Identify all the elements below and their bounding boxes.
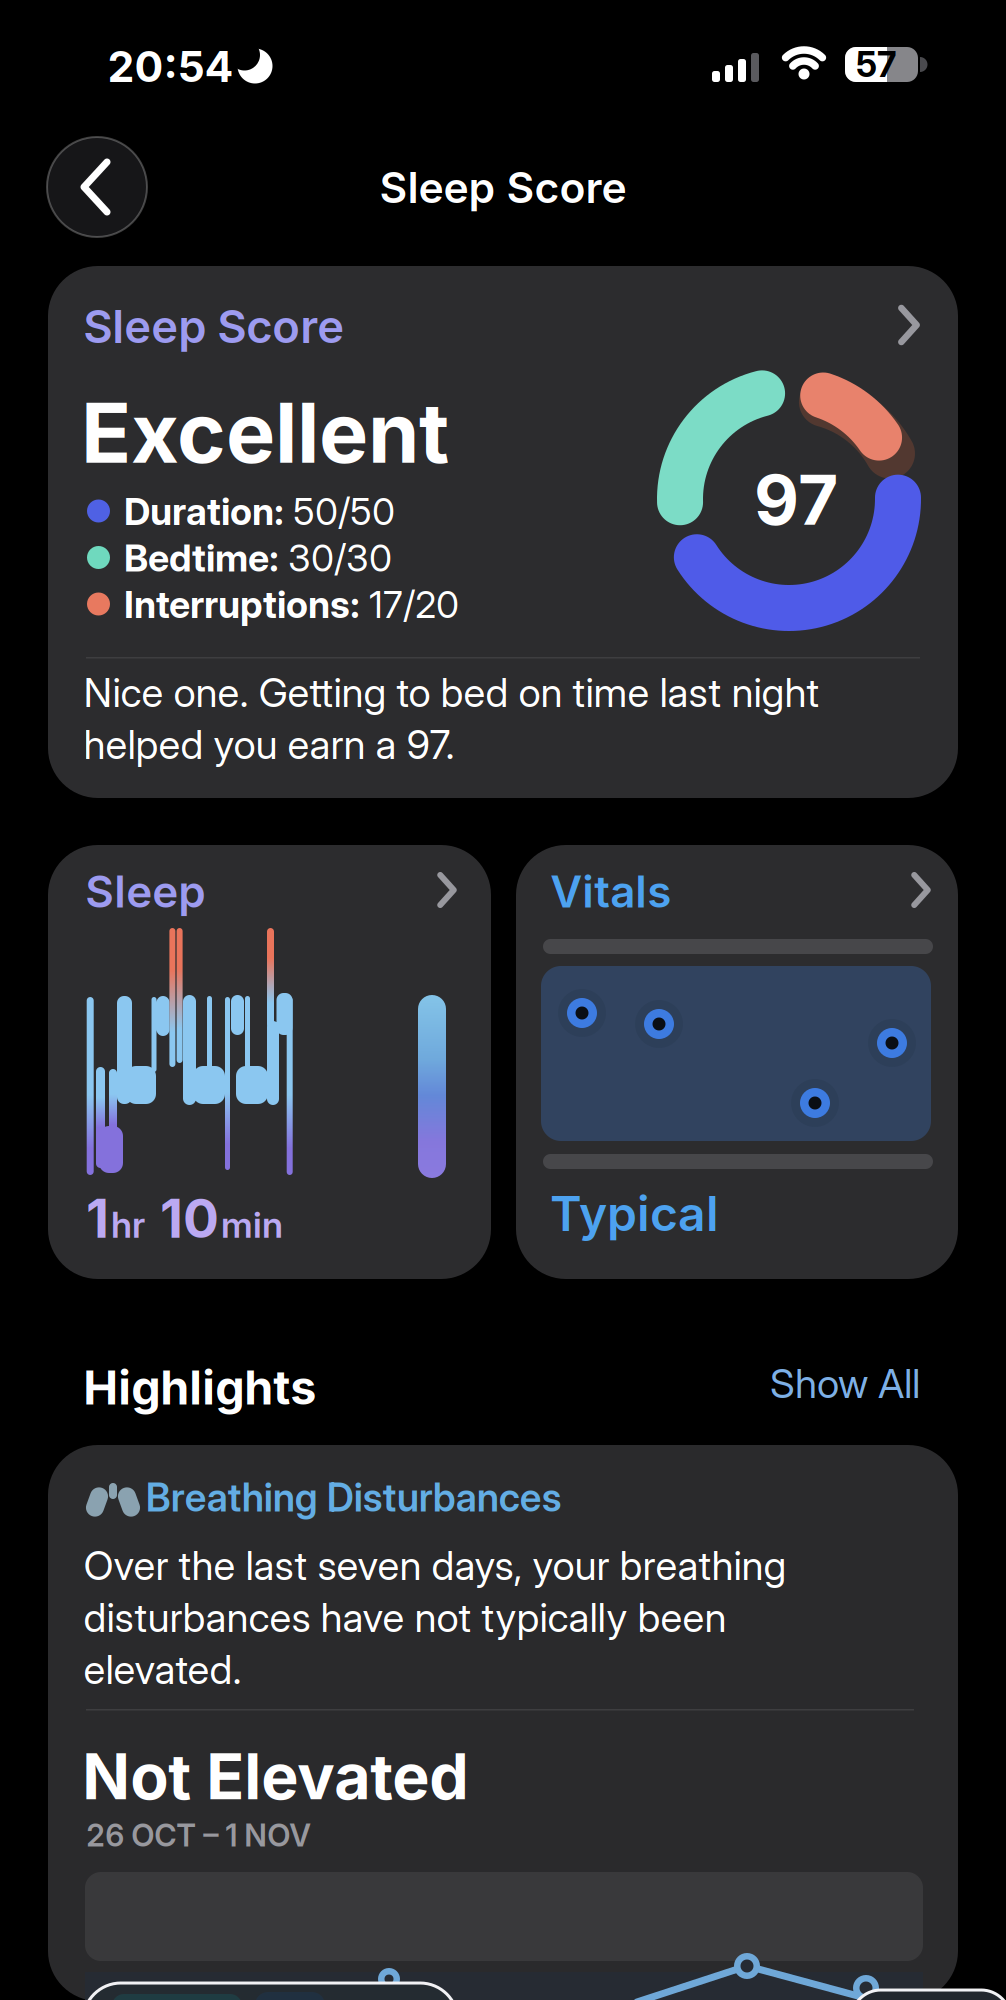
staticText: Over the last seven days, your breathing	[84, 1541, 787, 1590]
staticText: Sleep Score	[379, 162, 626, 213]
staticText: Sleep Score	[83, 299, 344, 354]
staticText: hr	[111, 1203, 145, 1246]
staticText: Vitals	[550, 865, 671, 918]
staticText: Highlights	[83, 1359, 316, 1416]
button[interactable]: Back	[47, 137, 147, 237]
staticText: 10	[147, 1186, 219, 1250]
staticText: 1	[86, 1186, 109, 1250]
button[interactable]: Vitals	[516, 845, 958, 1279]
staticText: 26 OCT – 1 NOV	[86, 1817, 311, 1854]
staticText: helped you earn a 97.	[84, 720, 455, 768]
staticText: Duration:	[124, 489, 284, 534]
staticText: Excellent	[81, 383, 449, 483]
staticText: Bedtime:	[124, 535, 279, 580]
staticText: Breathing Disturbances	[146, 1474, 562, 1521]
staticText: 97	[754, 458, 838, 542]
staticText: Interruptions:	[124, 582, 360, 627]
staticText: Sleep	[85, 865, 205, 918]
staticText: 50/50	[293, 489, 395, 534]
staticText: 17/20	[369, 582, 459, 627]
staticText: Nice one. Getting to bed on time last ni…	[84, 668, 820, 716]
button[interactable]: Sleep	[48, 845, 491, 1279]
staticText: elevated.	[84, 1645, 242, 1694]
staticText: min	[221, 1203, 283, 1246]
staticText: Show All	[770, 1359, 920, 1408]
staticText: disturbances have not typically been	[84, 1593, 727, 1642]
button[interactable]: Breathing Disturbances	[48, 1445, 958, 2000]
staticText: 20:54	[107, 41, 233, 92]
staticText: 57	[856, 43, 896, 85]
staticText: Typical	[550, 1184, 719, 1242]
staticText: Not Elevated	[82, 1739, 469, 1814]
staticText: 30/30	[288, 535, 392, 580]
button[interactable]: Sleep Score	[48, 266, 958, 798]
button[interactable]: Show All	[770, 1359, 920, 1408]
